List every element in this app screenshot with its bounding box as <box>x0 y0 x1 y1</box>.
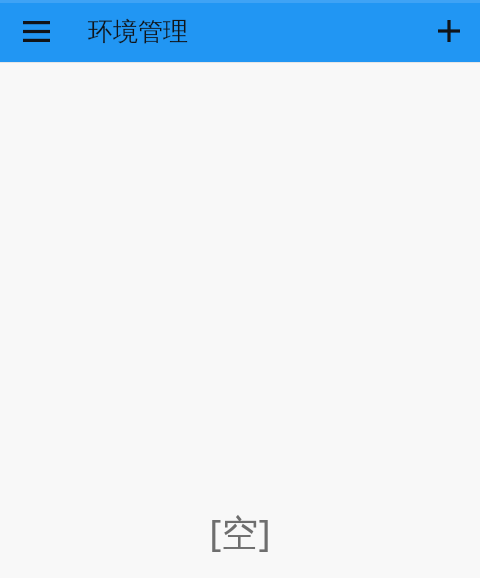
staticText: 环境管理 <box>88 16 188 47</box>
button[interactable]: Add <box>420 0 478 62</box>
staticText: [空] <box>0 506 480 557</box>
button[interactable]: Menu <box>6 0 66 62</box>
